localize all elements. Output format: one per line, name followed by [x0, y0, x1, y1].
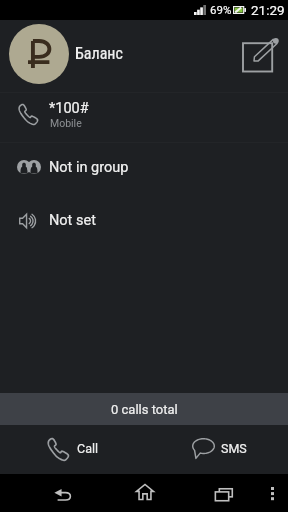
button[interactable]: Recent apps: [196, 474, 252, 512]
staticText: Not in group: [49, 159, 129, 176]
button[interactable]: Home: [117, 474, 173, 512]
button[interactable]: Not set: [0, 195, 288, 247]
staticText: Call: [77, 441, 99, 456]
staticText: Баланс: [75, 44, 123, 63]
staticText: Mobile: [50, 117, 82, 129]
staticText: 69%: [210, 3, 232, 16]
button[interactable]: SMS: [144, 425, 288, 474]
button[interactable]: *100#: [0, 93, 288, 142]
button[interactable]: Call: [0, 425, 144, 474]
button[interactable]: More options: [256, 474, 288, 512]
staticText: *100#: [49, 100, 89, 117]
staticText: SMS: [221, 441, 247, 456]
button[interactable]: Edit contact: [236, 30, 284, 78]
staticText: 21:29: [251, 2, 285, 18]
staticText: 0 calls total: [111, 402, 178, 417]
button[interactable]: Not in group: [0, 143, 288, 195]
staticText: Not set: [49, 212, 96, 229]
button[interactable]: Back: [36, 474, 92, 512]
